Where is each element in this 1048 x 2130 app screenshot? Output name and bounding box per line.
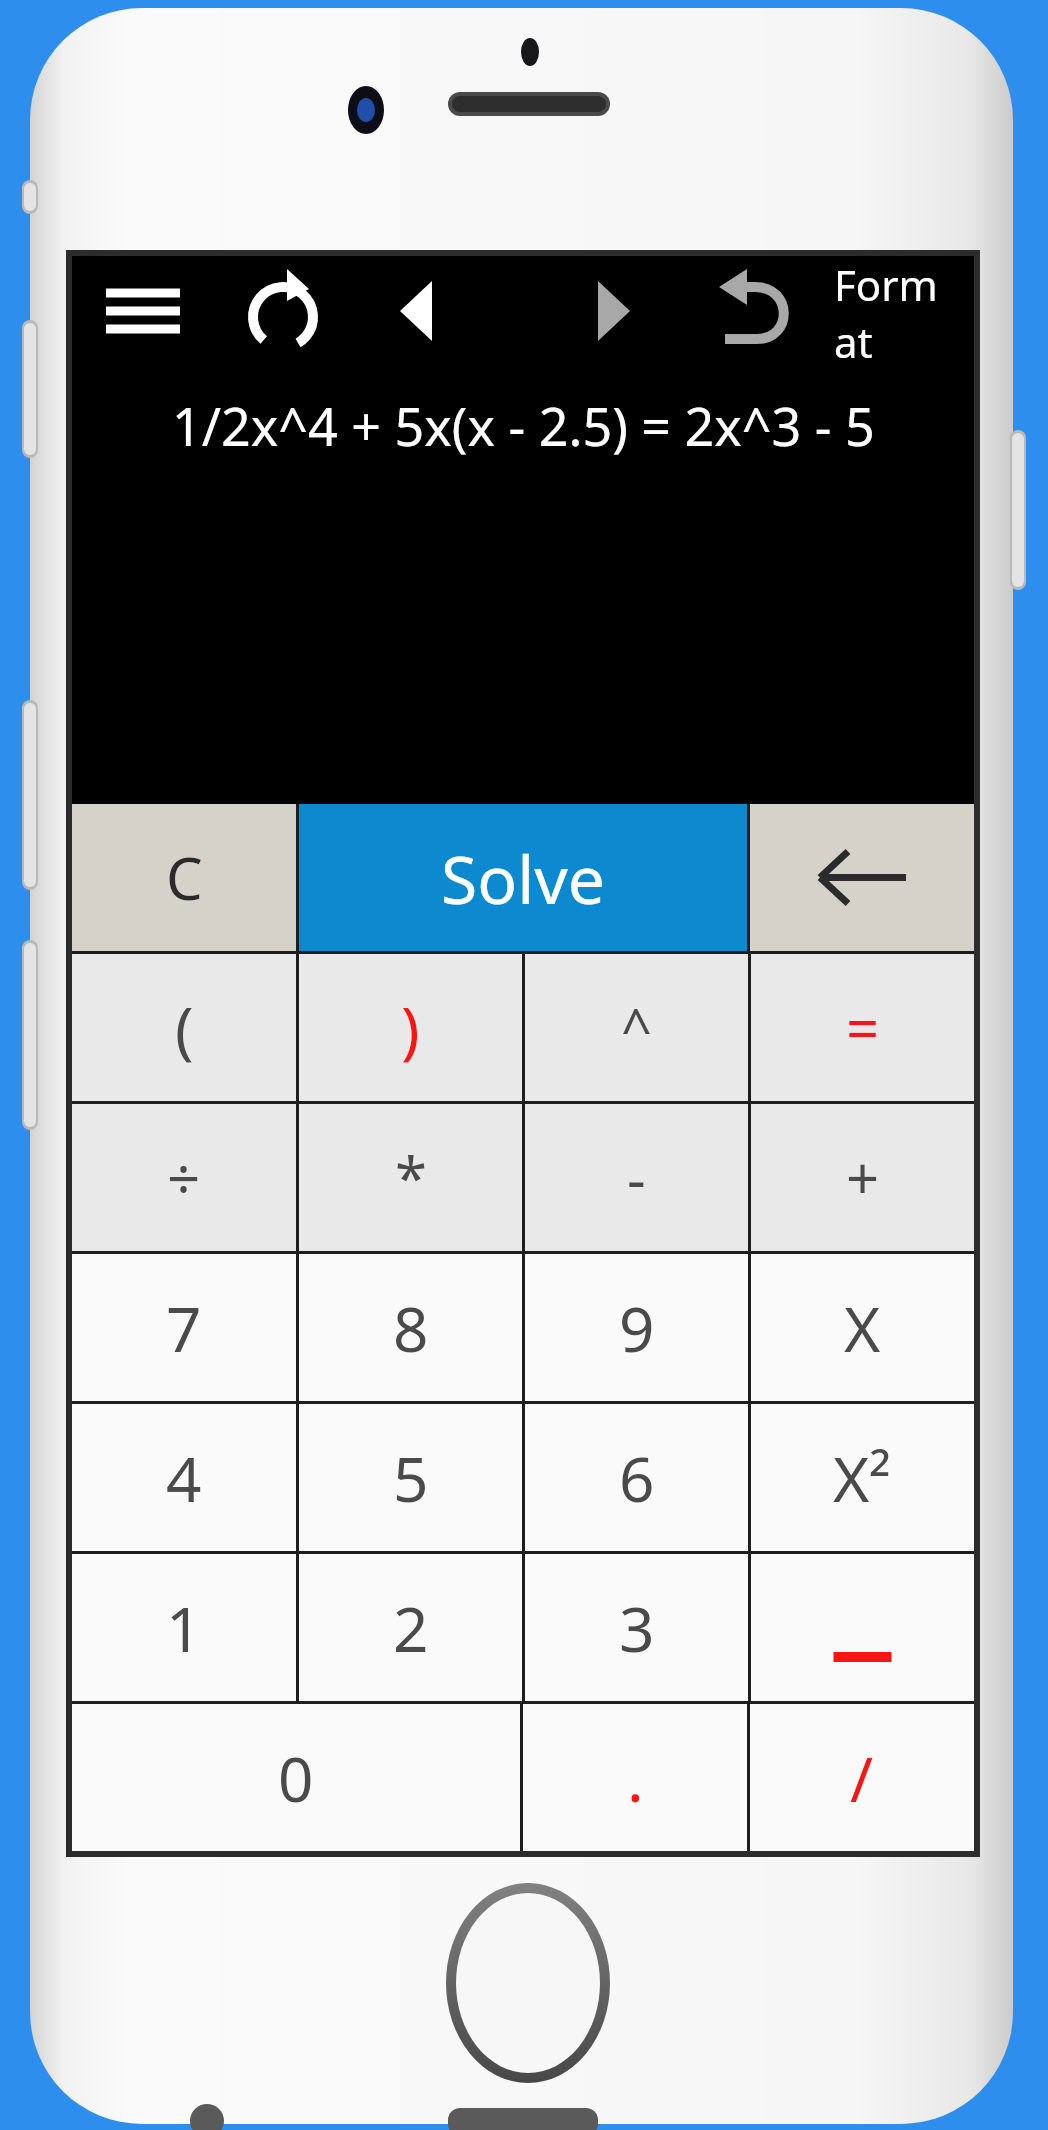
- button[interactable]: Solve: [299, 804, 747, 951]
- button[interactable]: (: [72, 954, 296, 1101]
- button[interactable]: Move cursor left: [362, 256, 472, 366]
- button[interactable]: C: [72, 804, 296, 951]
- staticText: ): [401, 986, 420, 1070]
- staticText: Format: [834, 256, 948, 366]
- staticText: -: [627, 1138, 646, 1217]
- button[interactable]: /: [750, 1704, 974, 1851]
- button[interactable]: Undo: [690, 256, 808, 366]
- button[interactable]: =: [751, 954, 974, 1101]
- staticText: ^: [621, 991, 652, 1065]
- staticText: 3: [619, 1586, 655, 1670]
- staticText: 0: [278, 1736, 314, 1820]
- staticText: 9: [619, 1286, 655, 1370]
- button[interactable]: X: [751, 1254, 974, 1401]
- staticText: 8: [393, 1286, 429, 1370]
- button[interactable]: Format: [808, 256, 974, 366]
- staticText: ÷: [167, 1138, 201, 1217]
- staticText: 5: [393, 1436, 429, 1520]
- staticText: 2: [393, 1586, 429, 1670]
- staticText: /: [850, 1736, 874, 1820]
- button[interactable]: X²: [751, 1404, 974, 1551]
- button[interactable]: 0: [72, 1704, 520, 1851]
- button[interactable]: Backspace: [750, 804, 974, 951]
- button[interactable]: Reset: [224, 256, 342, 366]
- staticText: 1: [166, 1586, 202, 1670]
- staticText: 7: [166, 1286, 202, 1370]
- button[interactable]: -: [525, 1104, 748, 1251]
- button[interactable]: *: [299, 1104, 522, 1251]
- button[interactable]: 3: [525, 1554, 748, 1701]
- staticText: 6: [619, 1436, 655, 1520]
- button[interactable]: 6: [525, 1404, 748, 1551]
- staticText: C: [166, 838, 203, 917]
- staticText: 4: [166, 1436, 202, 1520]
- button[interactable]: ): [299, 954, 522, 1101]
- staticText: X: [844, 1286, 881, 1370]
- button[interactable]: Underscore: [751, 1554, 974, 1701]
- button[interactable]: 2: [299, 1554, 522, 1701]
- staticText: =: [846, 988, 880, 1067]
- button[interactable]: Menu: [84, 256, 202, 366]
- staticText: *: [395, 1138, 427, 1217]
- button[interactable]: 9: [525, 1254, 748, 1401]
- staticText: (: [175, 986, 194, 1070]
- button[interactable]: 4: [72, 1404, 296, 1551]
- button[interactable]: ^: [525, 954, 748, 1101]
- button[interactable]: .: [523, 1704, 747, 1851]
- staticText: .: [627, 1736, 644, 1820]
- button[interactable]: +: [751, 1104, 974, 1251]
- button[interactable]: 7: [72, 1254, 296, 1401]
- staticText: +: [846, 1138, 880, 1217]
- staticText: X²: [833, 1436, 892, 1520]
- button[interactable]: 5: [299, 1404, 522, 1551]
- staticText: Solve: [441, 833, 605, 923]
- staticText: 1/2x^4 + 5x(x - 2.5) = 2x^3 - 5: [172, 390, 875, 461]
- button[interactable]: Move cursor right: [558, 256, 668, 366]
- button[interactable]: ÷: [72, 1104, 296, 1251]
- button[interactable]: 1: [72, 1554, 296, 1701]
- button[interactable]: 8: [299, 1254, 522, 1401]
